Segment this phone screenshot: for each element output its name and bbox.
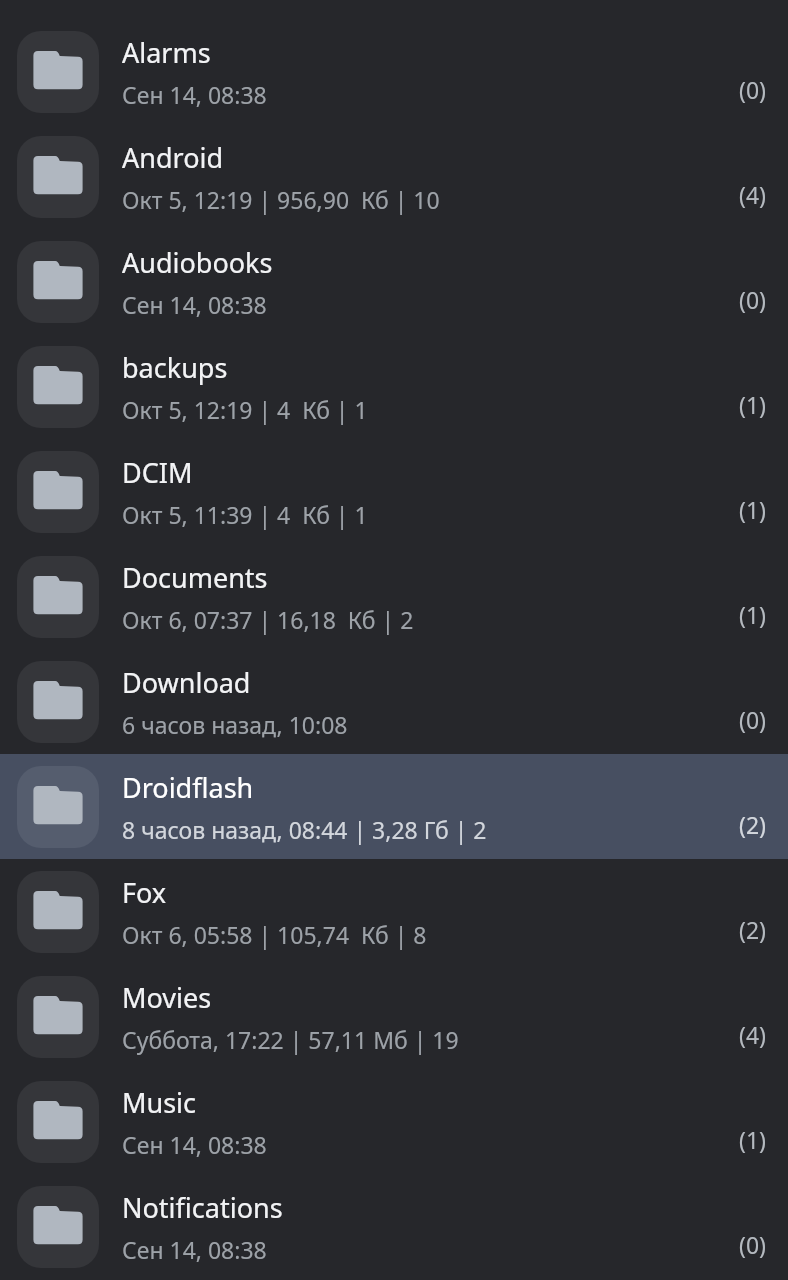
staticText: Android [122, 139, 224, 176]
button[interactable]: Music [0, 1069, 788, 1174]
button[interactable]: Audiobooks [0, 229, 788, 334]
button[interactable]: Download [0, 649, 788, 754]
staticText: DCIM [122, 454, 193, 491]
staticText: Окт 6, 07:37 | 16,18 Кб | 2 [122, 604, 414, 635]
staticText: (1) [708, 599, 766, 630]
button[interactable]: Android [0, 124, 788, 229]
staticText: Alarms [122, 34, 211, 71]
staticText: Сен 14, 08:38 [122, 79, 267, 110]
staticText: (0) [708, 704, 766, 735]
staticText: 6 часов назад, 10:08 [122, 709, 348, 740]
staticText: Сен 14, 08:38 [122, 1129, 267, 1160]
staticText: (1) [708, 1124, 766, 1155]
staticText: Сен 14, 08:38 [122, 1234, 267, 1265]
button[interactable]: Movies [0, 964, 788, 1069]
staticText: Сен 14, 08:38 [122, 289, 267, 320]
staticText: Окт 5, 12:19 | 4 Кб | 1 [122, 394, 368, 425]
staticText: (0) [708, 1229, 766, 1260]
staticText: Download [122, 664, 251, 701]
button[interactable]: Alarms [0, 19, 788, 124]
button[interactable]: Droidflash [0, 754, 788, 859]
button[interactable]: Documents [0, 544, 788, 649]
button[interactable]: Notifications [0, 1174, 788, 1279]
staticText: Окт 5, 11:39 | 4 Кб | 1 [122, 499, 368, 530]
staticText: (2) [708, 914, 766, 945]
staticText: Music [122, 1084, 197, 1121]
staticText: (1) [708, 494, 766, 525]
staticText: (2) [708, 809, 766, 840]
staticText: (0) [708, 74, 766, 105]
staticText: Notifications [122, 1189, 283, 1226]
staticText: (4) [708, 179, 766, 210]
staticText: Droidflash [122, 769, 254, 806]
staticText: (1) [708, 389, 766, 420]
button[interactable]: DCIM [0, 439, 788, 544]
staticText: 8 часов назад, 08:44 | 3,28 Гб | 2 [122, 814, 487, 845]
staticText: Audiobooks [122, 244, 273, 281]
button[interactable]: Fox [0, 859, 788, 964]
staticText: (0) [708, 284, 766, 315]
staticText: Суббота, 17:22 | 57,11 Мб | 19 [122, 1024, 459, 1055]
staticText: Окт 5, 12:19 | 956,90 Кб | 10 [122, 184, 440, 215]
staticText: Окт 6, 05:58 | 105,74 Кб | 8 [122, 919, 427, 950]
button[interactable]: backups [0, 334, 788, 439]
staticText: Documents [122, 559, 268, 596]
staticText: Fox [122, 874, 167, 911]
staticText: backups [122, 349, 228, 386]
staticText: (4) [708, 1019, 766, 1050]
staticText: Movies [122, 979, 212, 1016]
